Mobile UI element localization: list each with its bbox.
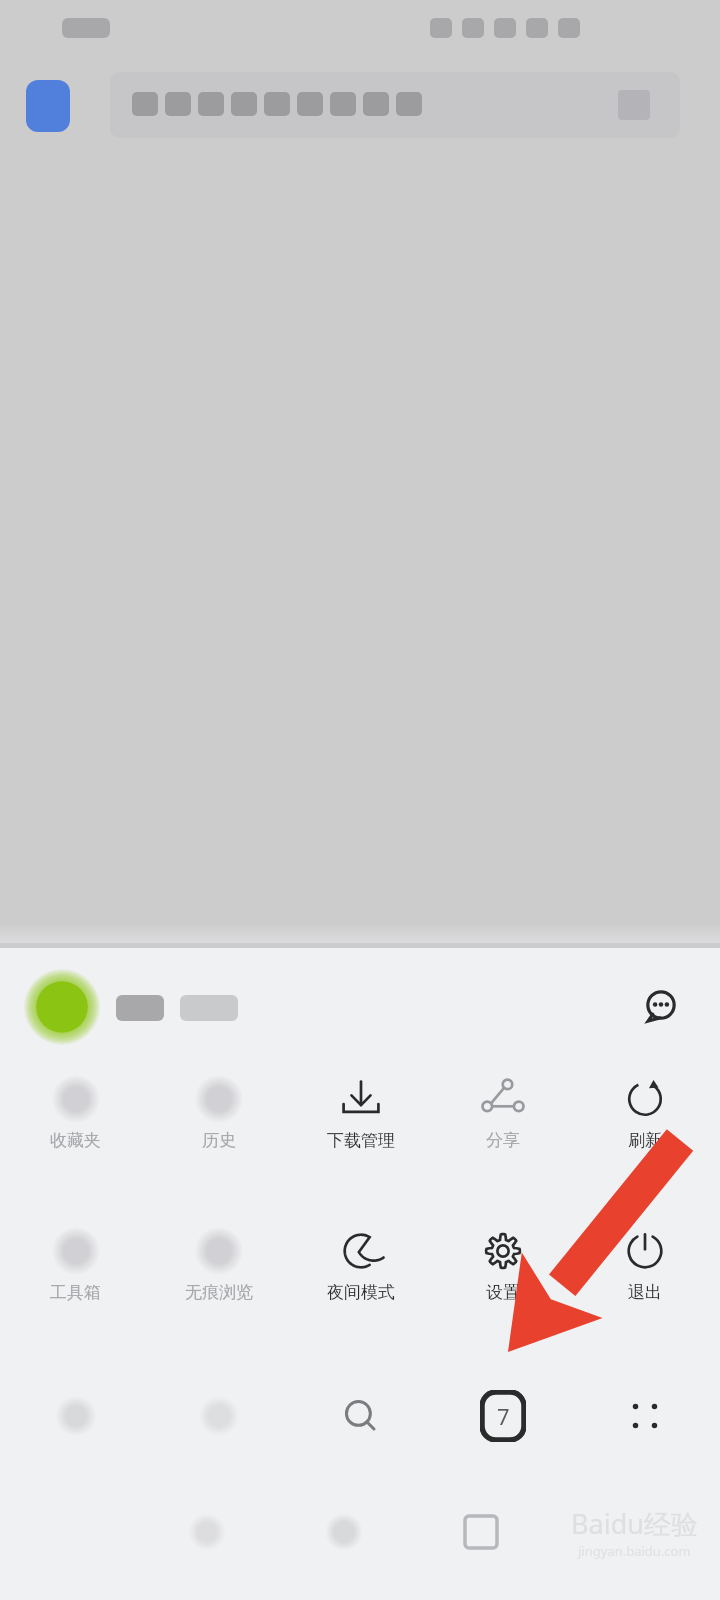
staticText: 退出	[628, 1282, 662, 1303]
staticText: 分享	[486, 1130, 520, 1151]
button[interactable]: 分享	[432, 1066, 574, 1157]
button[interactable]: Forward	[147, 1368, 290, 1464]
button[interactable]: 刷新	[574, 1066, 716, 1157]
staticText: 收藏夹	[50, 1130, 101, 1151]
button[interactable]: Tabs: 7 open	[432, 1368, 574, 1464]
button[interactable]: Back	[138, 1509, 275, 1555]
button[interactable]: 历史	[147, 1066, 290, 1157]
staticText: 夜间模式	[327, 1282, 395, 1303]
button[interactable]: 夜间模式	[290, 1218, 432, 1309]
staticText: 设置	[486, 1282, 520, 1303]
button[interactable]: More menu	[574, 1368, 716, 1464]
button[interactable]: 工具箱	[4, 1218, 147, 1309]
button[interactable]: Search	[290, 1368, 432, 1464]
staticText: 历史	[202, 1130, 236, 1151]
button[interactable]: Recents	[412, 1514, 549, 1550]
button[interactable]: 退出	[574, 1218, 716, 1309]
staticText: 刷新	[628, 1130, 662, 1151]
button[interactable]: Home	[275, 1509, 412, 1555]
button[interactable]: 设置	[432, 1218, 574, 1309]
staticText: 工具箱	[50, 1282, 101, 1303]
button[interactable]: 下载管理	[290, 1066, 432, 1157]
staticText: 7	[497, 1401, 510, 1431]
button[interactable]: 收藏夹	[4, 1066, 147, 1157]
button[interactable]: Back	[4, 1368, 147, 1464]
button[interactable]: 无痕浏览	[147, 1218, 290, 1309]
staticText: 下载管理	[327, 1130, 395, 1151]
staticText: 无痕浏览	[185, 1282, 253, 1303]
button[interactable]: Messages	[626, 972, 696, 1042]
staticText: jingyan.baidu.com	[578, 1542, 691, 1560]
staticText: Baidu经验	[571, 1505, 698, 1542]
button[interactable]: Messages	[0, 948, 720, 1066]
